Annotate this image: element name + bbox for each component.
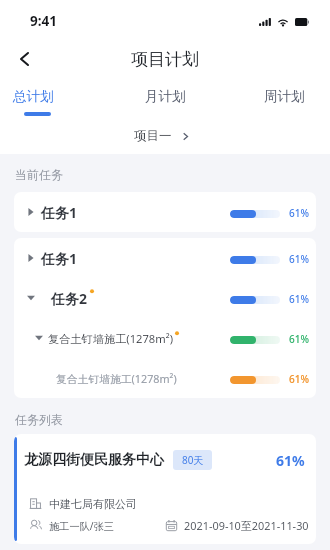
staticText: 61%: [289, 252, 309, 266]
staticText: 61%: [289, 372, 309, 386]
staticText: 中建七局有限公司: [49, 497, 137, 511]
staticText: 复合土钉墙施工(1278m²): [56, 371, 177, 386]
button[interactable]: 月计划: [136, 74, 194, 118]
staticText: 项目一: [134, 128, 172, 144]
staticText: 龙源四街便民服务中心: [24, 451, 164, 469]
button[interactable]: 龙源四街便民服务中心: [14, 434, 316, 544]
staticText: 任务1: [41, 249, 78, 268]
button[interactable]: Back: [9, 44, 39, 74]
staticText: 施工一队/张三: [49, 519, 114, 533]
staticText: 61%: [289, 332, 309, 346]
staticText: 80天: [182, 453, 204, 467]
staticText: 总计划: [13, 88, 54, 105]
button[interactable]: 周计划: [255, 74, 313, 118]
button[interactable]: 任务1: [14, 238, 316, 398]
staticText: 2021-09-10至2021-11-30: [184, 518, 309, 533]
staticText: 61%: [276, 451, 305, 470]
staticText: 61%: [289, 206, 309, 220]
staticText: 9:41: [30, 12, 57, 30]
button[interactable]: 任务1: [14, 192, 316, 232]
button[interactable]: 总计划: [4, 74, 62, 118]
staticText: 月计划: [145, 88, 186, 105]
staticText: 任务列表: [15, 412, 63, 427]
staticText: 周计划: [264, 88, 305, 105]
button[interactable]: 项目一: [134, 128, 190, 144]
staticText: 当前任务: [15, 167, 63, 182]
staticText: 项目计划: [131, 49, 199, 70]
staticText: 任务1: [41, 203, 78, 222]
staticText: 任务2: [51, 289, 88, 308]
staticText: 复合土钉墙施工(1278m²): [48, 331, 173, 346]
staticText: 61%: [289, 292, 309, 306]
